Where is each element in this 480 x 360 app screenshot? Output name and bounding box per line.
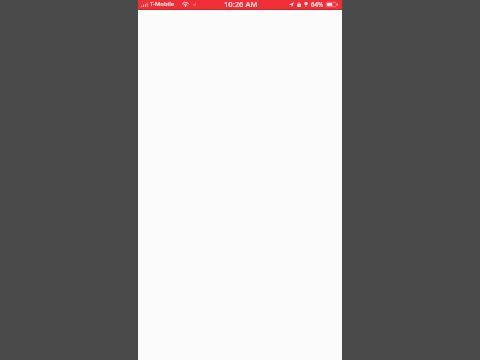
staticText: 64% xyxy=(311,0,324,8)
other: Rotation lock xyxy=(297,2,301,7)
other: Secondary line signal xyxy=(193,2,196,6)
other: Battery 64 percent xyxy=(326,2,338,7)
other: Location services active xyxy=(289,2,294,7)
staticText: T-Mobile xyxy=(150,0,175,8)
other: Wi-Fi connected xyxy=(182,1,189,7)
other: Alarm set xyxy=(304,2,308,7)
other: Cellular signal strength xyxy=(141,2,148,7)
button[interactable]: Status bar, 10:26 AM, T-Mobile, battery … xyxy=(138,0,342,10)
staticText: 10:26 AM xyxy=(224,0,258,9)
